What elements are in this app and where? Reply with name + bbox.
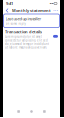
staticText: Last used up installer: [5, 16, 41, 21]
button[interactable]: Last used up installer: [3, 14, 59, 27]
button[interactable]: More options: [52, 7, 58, 14]
button[interactable]: Settings: [43, 110, 46, 113]
staticText: Monthly statement: [12, 8, 51, 13]
staticText: Transaction details: [5, 29, 42, 34]
staticText: on some reply: [5, 22, 25, 25]
staticText: ⋯: [53, 7, 58, 14]
staticText: Lorem ipsum dolor sit amet consectetur a…: [5, 35, 49, 49]
staticText: ▰▰: [49, 2, 53, 5]
button[interactable]: Library: [17, 110, 20, 113]
button[interactable]: Back: [4, 7, 10, 14]
button[interactable]: Toggle: [53, 35, 58, 38]
staticText: 9:41: [6, 1, 13, 6]
button[interactable]: Search: [30, 110, 33, 113]
